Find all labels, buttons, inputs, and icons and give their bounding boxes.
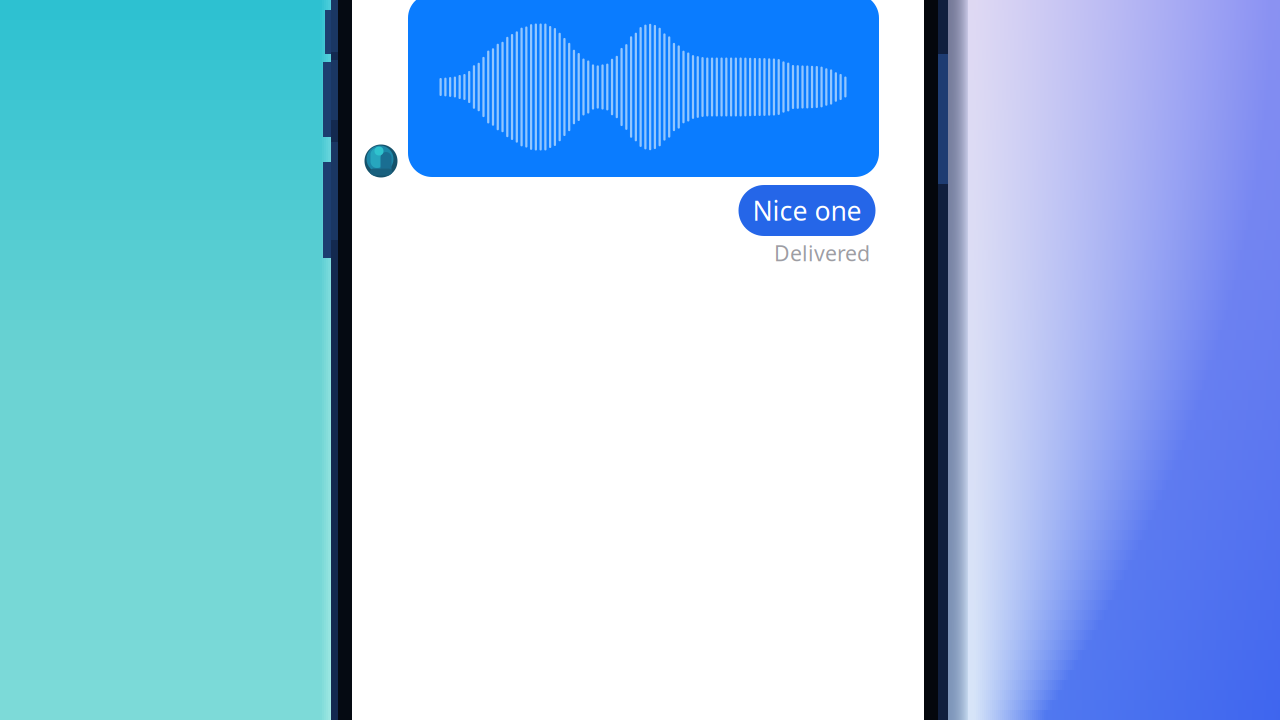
button[interactable]: Nice one <box>738 185 875 236</box>
button[interactable]: Play voice message <box>408 0 879 177</box>
staticText: Delivered <box>774 239 870 267</box>
staticText: Nice one <box>752 193 861 228</box>
